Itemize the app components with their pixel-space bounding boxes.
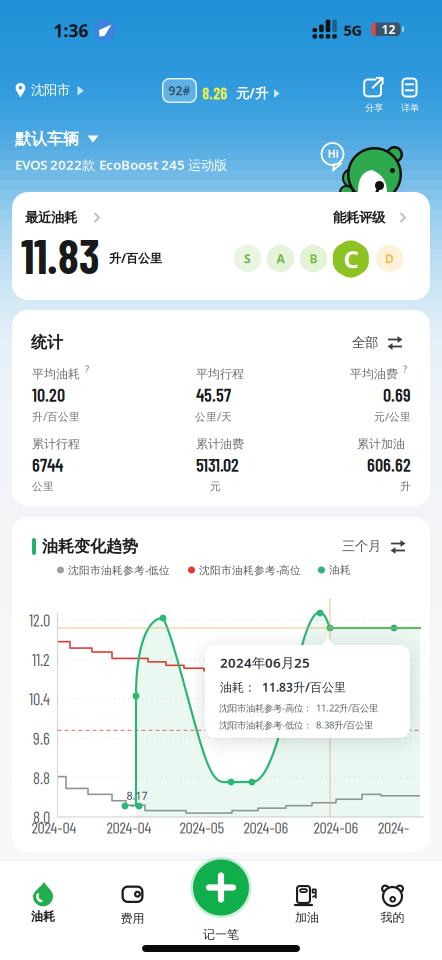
staticText: 12.0	[29, 610, 50, 630]
staticText: 2024-06	[243, 817, 288, 837]
staticText: A	[276, 250, 284, 266]
staticText: 2024-06	[313, 817, 358, 837]
button[interactable]: 92#	[0, 0, 442, 960]
staticText: 沈阳市油耗参考-低位： 8.38升/百公里	[219, 719, 373, 731]
staticText: 2024-05	[179, 817, 224, 837]
staticText: ?	[403, 363, 407, 375]
staticText: 默认车辆	[15, 129, 79, 149]
staticText: 元/升	[236, 84, 268, 102]
button[interactable]: 记一笔	[0, 0, 442, 960]
staticText: 2024-04	[106, 817, 151, 837]
button[interactable]: 最近油耗	[0, 0, 442, 960]
staticText: 8.8	[33, 768, 50, 787]
button[interactable]: 默认车辆	[0, 0, 442, 960]
button[interactable]: 详单	[0, 0, 442, 960]
staticText: 606.62	[367, 454, 411, 475]
button[interactable]: 费用	[0, 0, 442, 960]
staticText: 记一笔	[203, 927, 239, 942]
staticText: 11.2	[32, 650, 50, 669]
staticText: 升	[400, 480, 411, 493]
staticText: 8.26	[202, 83, 227, 103]
staticText: 沈阳市	[31, 82, 70, 98]
staticText: 8.0	[33, 807, 50, 827]
staticText: 分享	[365, 102, 383, 114]
staticText: 2024年06月25	[220, 654, 310, 671]
staticText: D	[385, 250, 394, 266]
button[interactable]: 我的	[0, 0, 442, 960]
staticText: 加油	[295, 910, 319, 925]
button[interactable]: 能耗评级	[0, 0, 442, 960]
staticText: 最近油耗	[25, 209, 77, 226]
staticText: 全部	[352, 334, 378, 351]
staticText: 油耗： 11.83升/百公里	[220, 679, 346, 695]
staticText: 5131.02	[196, 454, 239, 475]
staticText: 10.20	[32, 384, 65, 405]
staticText: 元	[210, 480, 221, 493]
staticText: 统计	[31, 333, 63, 352]
staticText: 10.4	[29, 689, 50, 709]
staticText: C	[343, 243, 358, 275]
staticText: 累计油费	[196, 437, 244, 451]
staticText: 5G	[343, 20, 362, 40]
staticText: 12	[381, 21, 395, 37]
staticText: 累计行程	[32, 437, 80, 451]
staticText: 平均行程	[196, 367, 244, 381]
staticText: 2024-	[378, 817, 409, 837]
button[interactable]: 三个月	[0, 0, 442, 960]
staticText: 公里	[32, 480, 54, 493]
staticText: 1:36	[53, 19, 88, 42]
staticText: 累计加油	[357, 437, 405, 451]
staticText: 油耗变化趋势	[42, 537, 138, 556]
staticText: 能耗评级	[333, 209, 385, 226]
staticText: 11.83	[21, 227, 100, 283]
staticText: 油耗	[31, 909, 55, 924]
staticText: 9.6	[33, 728, 50, 748]
staticText: 公里/天	[195, 409, 232, 424]
staticText: 升/百公里	[109, 250, 162, 266]
staticText: 油耗	[329, 563, 351, 576]
staticText: 费用	[120, 911, 144, 926]
staticText: 平均油费	[350, 367, 398, 381]
staticText: 8.17	[126, 788, 147, 803]
staticText: 我的	[380, 910, 404, 925]
staticText: 2024-04	[31, 817, 76, 837]
staticText: 45.57	[196, 384, 231, 405]
staticText: 92#	[168, 82, 190, 98]
staticText: 沈阳市油耗参考-低位	[68, 563, 170, 577]
staticText: 6744	[32, 454, 63, 475]
button[interactable]: 分享	[0, 0, 442, 960]
staticText: S	[244, 250, 251, 266]
staticText: 三个月	[342, 538, 381, 554]
staticText: 升/百公里	[32, 409, 80, 424]
staticText: 平均油耗	[32, 367, 80, 381]
staticText: B	[309, 250, 317, 266]
staticText: 元/公里	[374, 409, 411, 424]
staticText: 0.69	[383, 384, 411, 405]
button[interactable]: 加油	[0, 0, 442, 960]
staticText: ?	[85, 363, 89, 375]
staticText: EVOS 2022款 EcoBoost 245 运动版	[15, 156, 227, 173]
staticText: 沈阳市油耗参考-高位	[199, 563, 301, 577]
button[interactable]: 沈阳市	[0, 0, 442, 960]
staticText: Hi	[327, 146, 338, 161]
staticText: 详单	[401, 102, 419, 114]
button[interactable]: 全部	[0, 0, 442, 960]
staticText: 沈阳市油耗参考-高位： 11.22升/百公里	[219, 702, 378, 714]
button[interactable]: 油耗	[0, 0, 442, 960]
